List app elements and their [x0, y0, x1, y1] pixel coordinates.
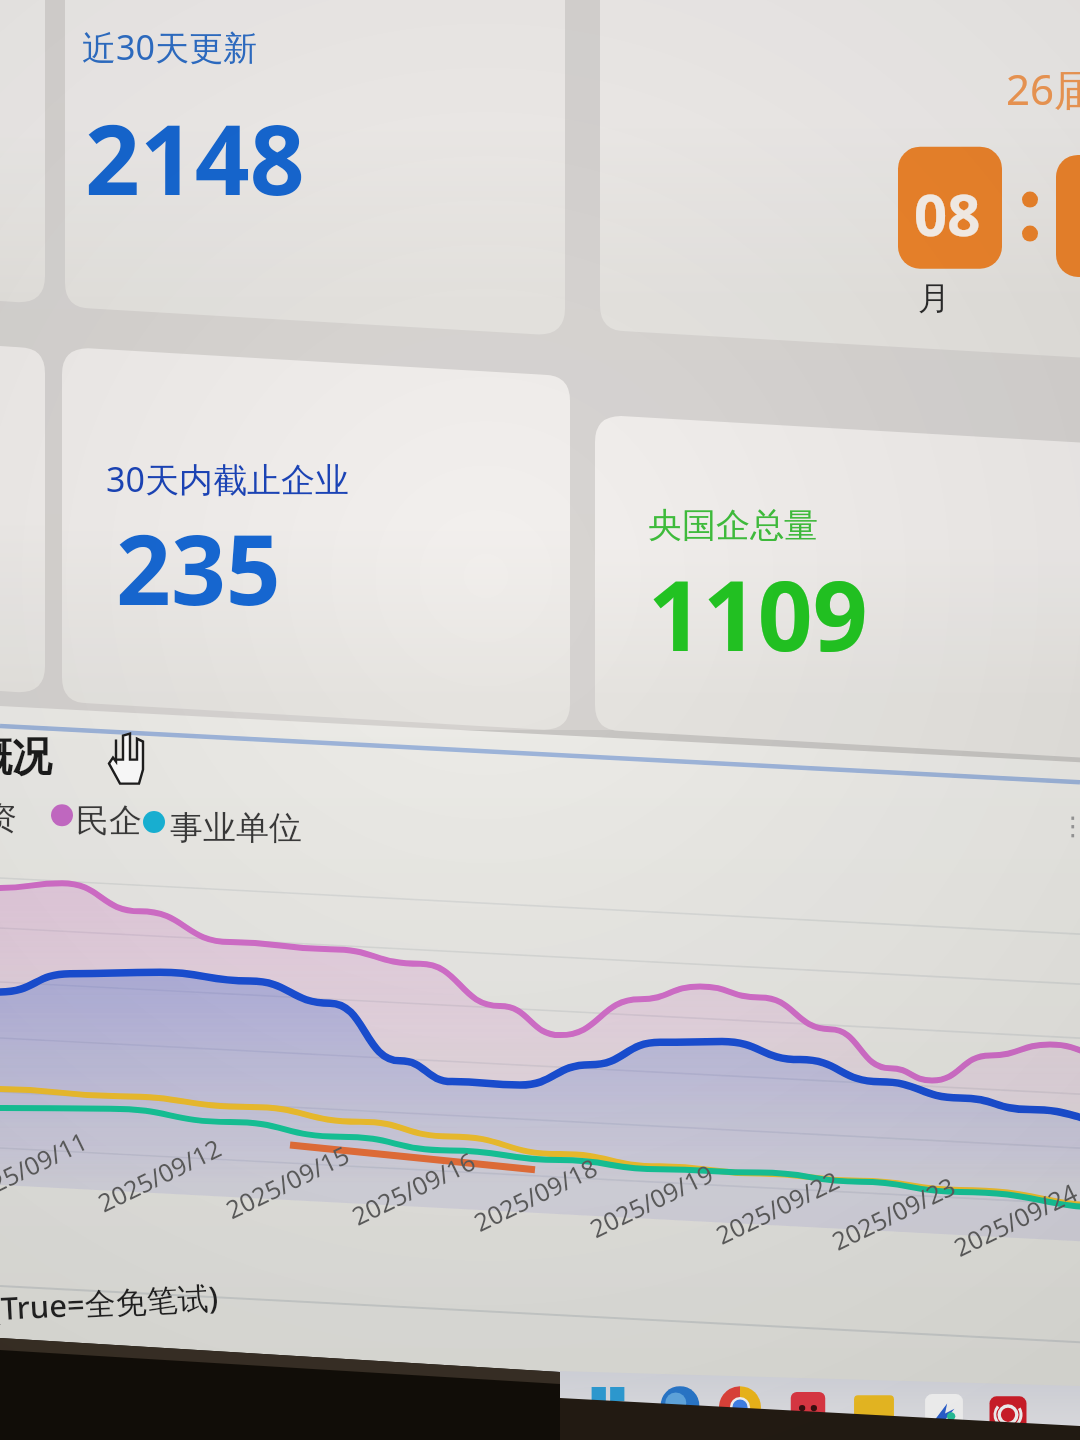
button[interactable]: Edge 浏览器 [658, 1356, 702, 1416]
button[interactable]: 快捷应用 [922, 1356, 966, 1416]
button[interactable]: 文件资源管理器 [852, 1356, 896, 1416]
button[interactable]: 近30天更新 2148 [65, 0, 565, 305]
button[interactable]: 央国企总量 1109 [595, 385, 1080, 700]
button[interactable]: Chrome 浏览器 [718, 1356, 762, 1416]
button[interactable]: 网易云音乐 [986, 1356, 1030, 1416]
button[interactable]: 概况趋势图表 [0, 706, 1080, 1276]
button[interactable]: 30天内截止企业 235 [62, 345, 570, 700]
button[interactable]: 26届倒计时 [600, 0, 1080, 300]
button[interactable]: 开始 [586, 1356, 630, 1416]
button[interactable]: 应用 [786, 1356, 830, 1416]
